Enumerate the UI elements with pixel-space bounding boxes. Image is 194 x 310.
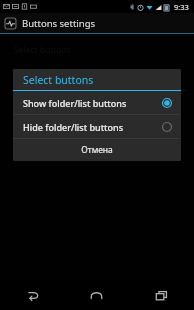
staticText: 9:33: [174, 2, 189, 12]
staticText: Buttons settings: [22, 17, 96, 30]
button[interactable]: Home: [64, 280, 129, 310]
button[interactable]: Hide folder/list buttons: [13, 115, 181, 138]
button[interactable]: Отмена: [13, 139, 181, 161]
button[interactable]: Show folder/list buttons: [13, 91, 181, 114]
staticText: Show folder/list buttons: [23, 97, 162, 109]
staticText: Select buttons: [23, 73, 94, 87]
staticText: Hide folder/list buttons: [23, 121, 162, 133]
button[interactable]: Back: [0, 280, 64, 310]
staticText: Отмена: [81, 144, 113, 156]
button[interactable]: Recent apps: [129, 280, 194, 310]
staticText: Select buttons: [14, 44, 71, 56]
